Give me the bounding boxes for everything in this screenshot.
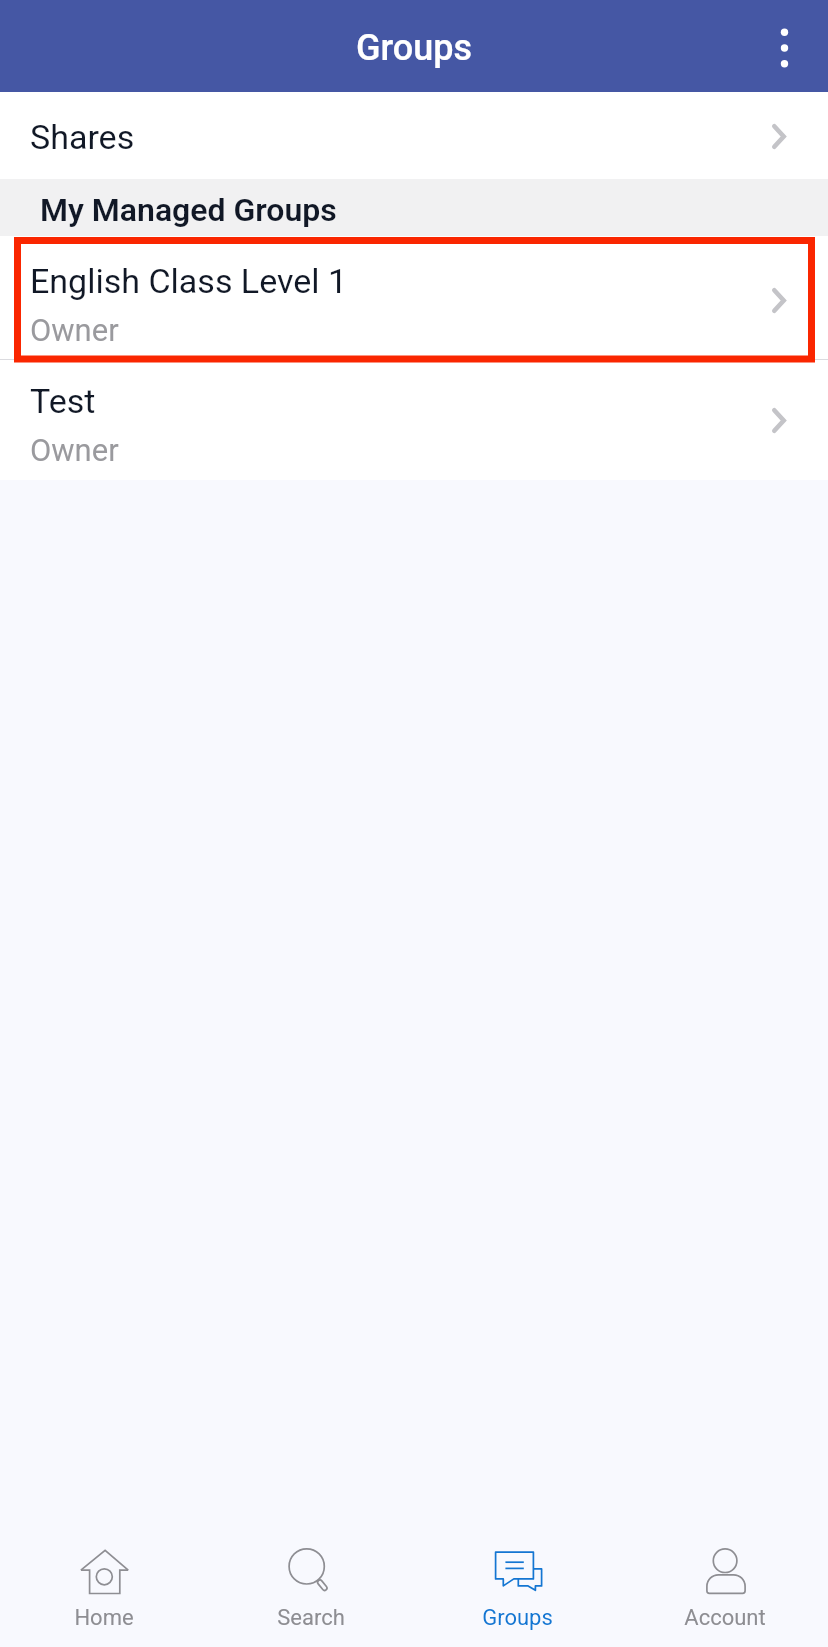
button[interactable]: Shares <box>0 92 828 179</box>
button[interactable]: Account <box>621 1512 828 1647</box>
staticText: Search <box>277 1605 345 1631</box>
staticText: Groups <box>356 27 473 69</box>
staticText: My Managed Groups <box>40 191 337 229</box>
staticText: Groups <box>482 1605 553 1631</box>
staticText: Shares <box>30 117 135 157</box>
button[interactable]: More options <box>740 0 828 92</box>
staticText: Owner <box>30 432 119 468</box>
button[interactable]: Groups <box>414 1512 621 1647</box>
staticText: English Class Level 1 <box>30 261 348 301</box>
staticText: Owner <box>30 312 119 348</box>
staticText: Home <box>74 1605 134 1631</box>
button[interactable]: Test <box>0 360 828 480</box>
button[interactable]: Home <box>0 1512 207 1647</box>
staticText: Account <box>684 1605 766 1631</box>
staticText: Test <box>30 381 96 421</box>
button[interactable]: English Class Level 1 <box>0 236 828 359</box>
button[interactable]: Search <box>207 1512 414 1647</box>
